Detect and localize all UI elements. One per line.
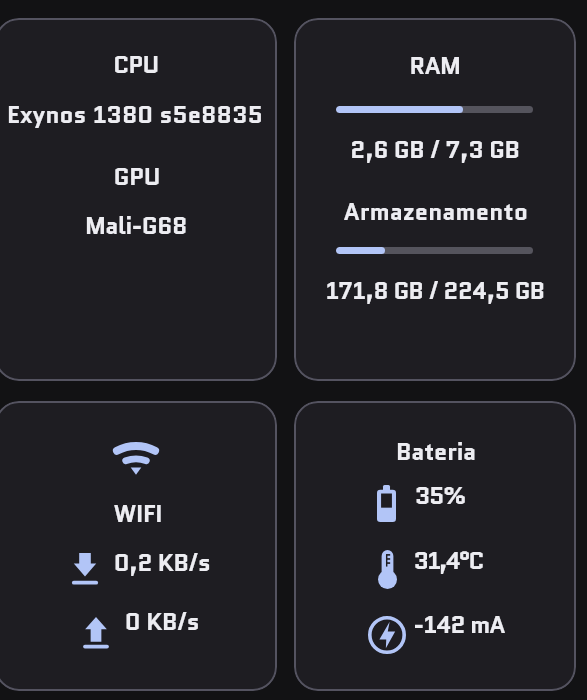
staticText: WIFI xyxy=(0,497,418,530)
staticText: 171,8 GB / 224,5 GB xyxy=(155,275,587,308)
other: Download speed xyxy=(72,553,98,585)
staticText: 2,6 GB / 7,3 GB xyxy=(155,133,587,166)
other: Wi-Fi xyxy=(113,441,159,475)
staticText: GPU xyxy=(0,160,417,193)
staticText: 35% xyxy=(160,479,587,512)
button[interactable]: Wi-Fi info xyxy=(0,401,277,691)
staticText: RAM xyxy=(155,49,587,82)
staticText: 0 KB/s xyxy=(0,605,442,638)
button[interactable]: Processor info xyxy=(0,18,277,381)
staticText: Mali-G68 xyxy=(0,209,416,242)
staticText: 31,4°C xyxy=(168,544,587,577)
staticText: Armazenamento xyxy=(156,195,587,228)
staticText: -142 mA xyxy=(179,608,587,641)
other: Charging current xyxy=(368,616,406,654)
staticText: Bateria xyxy=(156,435,587,468)
button[interactable]: Battery info xyxy=(294,401,576,691)
other: Battery level xyxy=(377,485,396,522)
staticText: 0,2 KB/s xyxy=(0,546,442,579)
other: Temperature xyxy=(378,550,397,589)
other: Upload speed xyxy=(84,617,108,648)
staticText: CPU xyxy=(0,48,416,81)
staticText: Exynos 1380 s5e8835 xyxy=(0,98,415,131)
button[interactable]: Memory info xyxy=(294,18,576,381)
